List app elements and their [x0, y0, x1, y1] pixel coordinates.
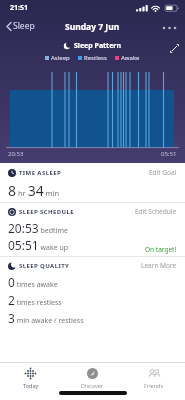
staticText: Restless [84, 54, 107, 62]
button[interactable]: SLEEP QUALITY [8, 261, 177, 270]
staticText: 05:51 wake up [8, 237, 69, 253]
button[interactable]: Friends [123, 362, 185, 400]
button[interactable] [169, 43, 180, 54]
staticText: Edit Goal [149, 168, 177, 177]
button[interactable]: Discover [61, 362, 123, 400]
staticText: SLEEP QUALITY [19, 262, 70, 270]
staticText: Awake [121, 54, 140, 62]
staticText: SLEEP SCHEDULE [19, 208, 75, 216]
staticText: Sleep [13, 20, 35, 32]
staticText: 05:51 [161, 150, 177, 158]
staticText: On target! [145, 245, 177, 254]
button[interactable]: Sleep [5, 20, 35, 32]
staticText: 8 hr 34 min [8, 181, 60, 200]
button[interactable]: Today [0, 362, 61, 400]
staticText: Edit Schedule [135, 207, 177, 216]
staticText: Discover [81, 382, 104, 389]
staticText: 20:53 bedtime [8, 220, 68, 236]
staticText: Sunday 7 Jun [65, 21, 120, 33]
staticText: Friends [144, 382, 164, 389]
staticText: 21:51 [10, 3, 28, 13]
staticText: Sleep Pattern [74, 41, 122, 51]
staticText: 3 min awake / restless [8, 310, 84, 326]
button[interactable]: SLEEP SCHEDULE [8, 207, 177, 216]
button[interactable]: TIME ASLEEP [8, 168, 177, 177]
staticText: Learn More [141, 261, 177, 270]
staticText: 0 times awake [8, 274, 58, 290]
button[interactable] [161, 24, 179, 32]
staticText: Today [23, 382, 39, 389]
staticText: 20:53 [8, 150, 24, 158]
staticText: TIME ASLEEP [19, 169, 62, 177]
staticText: Asleep [51, 54, 70, 62]
staticText: 2 times restless [8, 292, 62, 308]
